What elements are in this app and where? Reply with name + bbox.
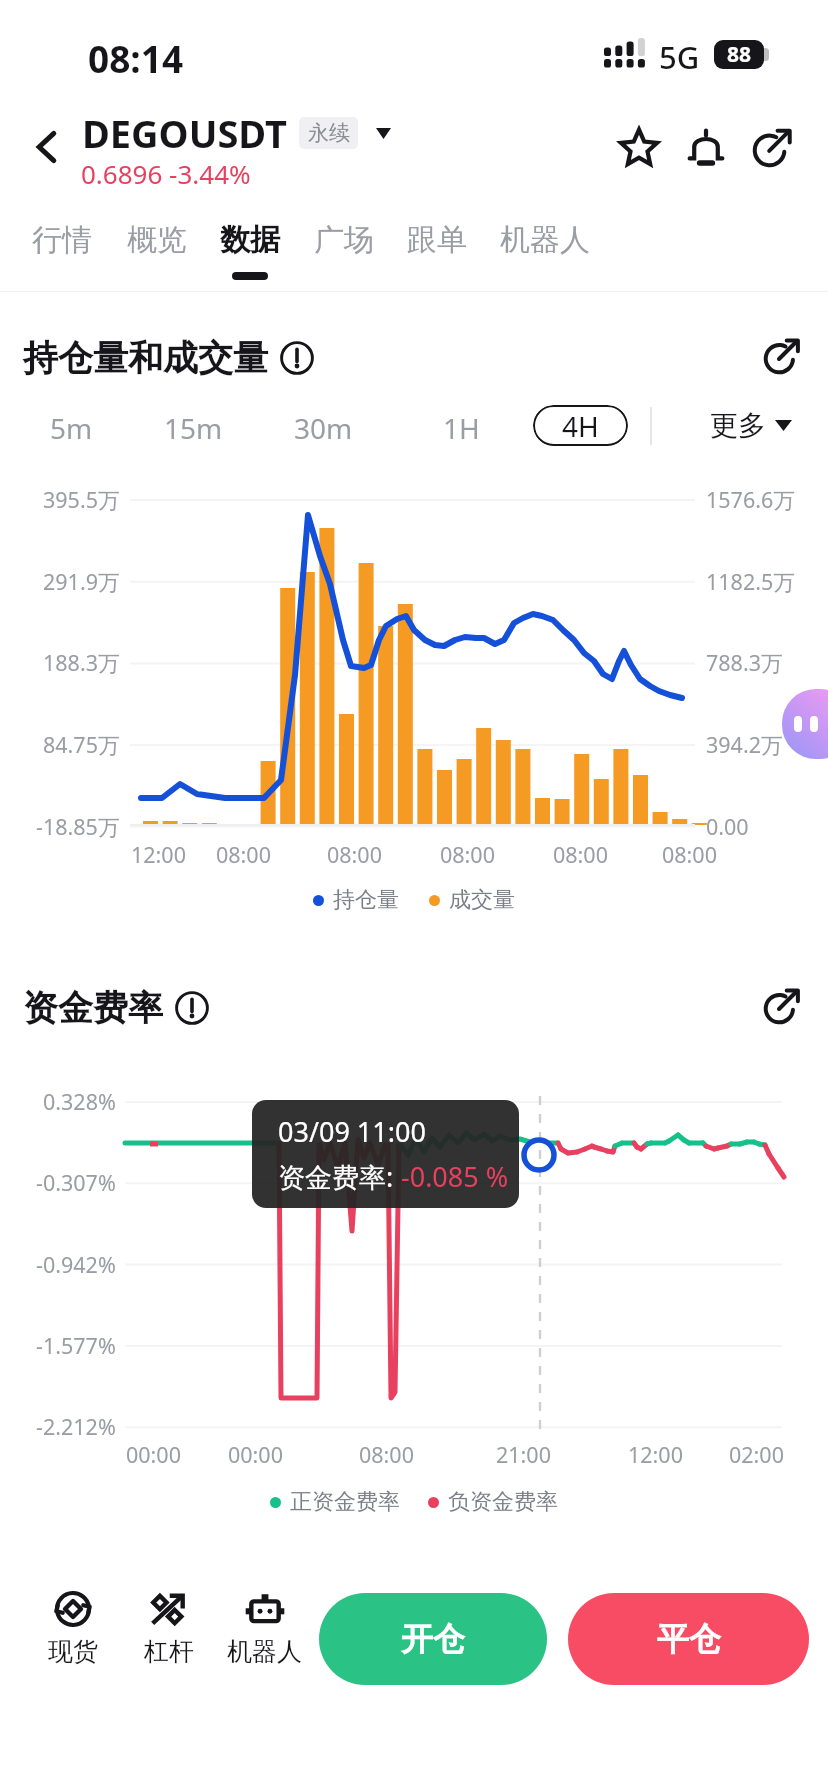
button[interactable]: 行情 xyxy=(12,210,112,286)
staticText: 1182.5万 xyxy=(706,567,795,596)
button[interactable]: 跟单 xyxy=(387,210,487,286)
staticText: 0.6896 -3.44% xyxy=(81,156,251,191)
staticText: 0.328% xyxy=(43,1087,116,1116)
button[interactable]: 数据 xyxy=(200,210,300,286)
staticText: 负资金费率 xyxy=(448,1488,558,1516)
staticText: 现货 xyxy=(48,1636,98,1667)
staticText: 30m xyxy=(294,409,353,447)
button[interactable]: 机器人 xyxy=(477,210,613,286)
staticText: 84.75万 xyxy=(43,730,120,759)
staticText: -0.942% xyxy=(36,1250,116,1279)
staticText: 08:00 xyxy=(440,840,495,869)
staticText: 1H xyxy=(443,409,480,447)
staticText: 395.5万 xyxy=(43,485,120,514)
button[interactable]: 平仓 xyxy=(568,1593,809,1685)
button[interactable]: Expand open interest chart xyxy=(759,332,805,378)
staticText: 杠杆 xyxy=(144,1636,194,1667)
staticText: 12:00 xyxy=(131,840,186,869)
staticText: -18.85万 xyxy=(36,812,120,841)
staticText: 1576.6万 xyxy=(706,485,795,514)
staticText: 行情 xyxy=(32,221,92,259)
staticText: 跟单 xyxy=(407,221,467,259)
staticText: 08:00 xyxy=(216,840,271,869)
staticText: -0.085 % xyxy=(401,1158,509,1195)
staticText: 88 xyxy=(727,40,752,69)
staticText: 资金费率 xyxy=(23,986,163,1030)
staticText: 机器人 xyxy=(227,1636,302,1667)
staticText: 持仓量和成交量 xyxy=(23,336,268,380)
staticText: 21:00 xyxy=(496,1440,551,1469)
button[interactable]: 15m xyxy=(158,403,228,453)
button[interactable]: 广场 xyxy=(294,210,394,286)
staticText: 更多 xyxy=(710,408,766,443)
staticText: 788.3万 xyxy=(706,648,783,677)
button[interactable]: 现货 xyxy=(23,1590,123,1686)
button[interactable]: Select contract xyxy=(368,118,398,148)
staticText: 平仓 xyxy=(657,1619,721,1659)
button[interactable]: 4H xyxy=(533,405,628,446)
staticText: 08:00 xyxy=(553,840,608,869)
staticText: 成交量 xyxy=(449,886,515,914)
staticText: 00:00 xyxy=(228,1440,283,1469)
button[interactable]: 概览 xyxy=(107,210,207,286)
staticText: 08:14 xyxy=(88,33,184,83)
staticText: 291.9万 xyxy=(43,567,120,596)
staticText: 永续 xyxy=(308,120,350,146)
staticText: 08:00 xyxy=(327,840,382,869)
staticText: 广场 xyxy=(314,221,374,259)
button[interactable]: Assistant xyxy=(782,689,828,759)
button[interactable]: 1H xyxy=(426,403,496,453)
staticText: 03/09 11:00 xyxy=(278,1113,426,1150)
button[interactable]: Price alert xyxy=(677,118,735,176)
staticText: 正资金费率 xyxy=(290,1488,400,1516)
button[interactable]: Share xyxy=(744,118,802,176)
staticText: DEGOUSDT xyxy=(82,107,287,159)
button[interactable]: Back xyxy=(16,116,78,178)
staticText: 00:00 xyxy=(126,1440,181,1469)
staticText: 0.00 xyxy=(706,812,749,841)
button[interactable]: 杠杆 xyxy=(119,1590,219,1686)
staticText: 188.3万 xyxy=(43,648,120,677)
staticText: 资金费率: xyxy=(278,1158,401,1195)
button[interactable]: Favorite xyxy=(610,118,668,176)
staticText: 08:00 xyxy=(359,1440,414,1469)
staticText: 02:00 xyxy=(729,1440,784,1469)
button[interactable]: 30m xyxy=(288,403,358,453)
staticText: 394.2万 xyxy=(706,730,783,759)
button[interactable]: 5m xyxy=(36,403,106,453)
staticText: 机器人 xyxy=(500,221,590,259)
button[interactable]: 机器人 xyxy=(214,1590,314,1686)
button[interactable]: 永续 xyxy=(299,117,358,149)
staticText: 5G xyxy=(659,36,700,78)
staticText: 数据 xyxy=(220,221,280,259)
staticText: 概览 xyxy=(127,221,187,259)
staticText: 5m xyxy=(50,409,93,447)
staticText: -0.307% xyxy=(36,1168,116,1197)
button[interactable]: Expand funding rate chart xyxy=(759,982,805,1028)
staticText: -1.577% xyxy=(36,1331,116,1360)
staticText: 15m xyxy=(164,409,223,447)
staticText: 12:00 xyxy=(628,1440,683,1469)
staticText: 4H xyxy=(562,407,599,445)
staticText: 08:00 xyxy=(662,840,717,869)
staticText: 开仓 xyxy=(401,1619,465,1659)
staticText: 持仓量 xyxy=(333,886,399,914)
button[interactable]: 开仓 xyxy=(319,1593,547,1685)
button[interactable]: 更多 xyxy=(710,403,792,448)
staticText: -2.212% xyxy=(36,1412,116,1441)
